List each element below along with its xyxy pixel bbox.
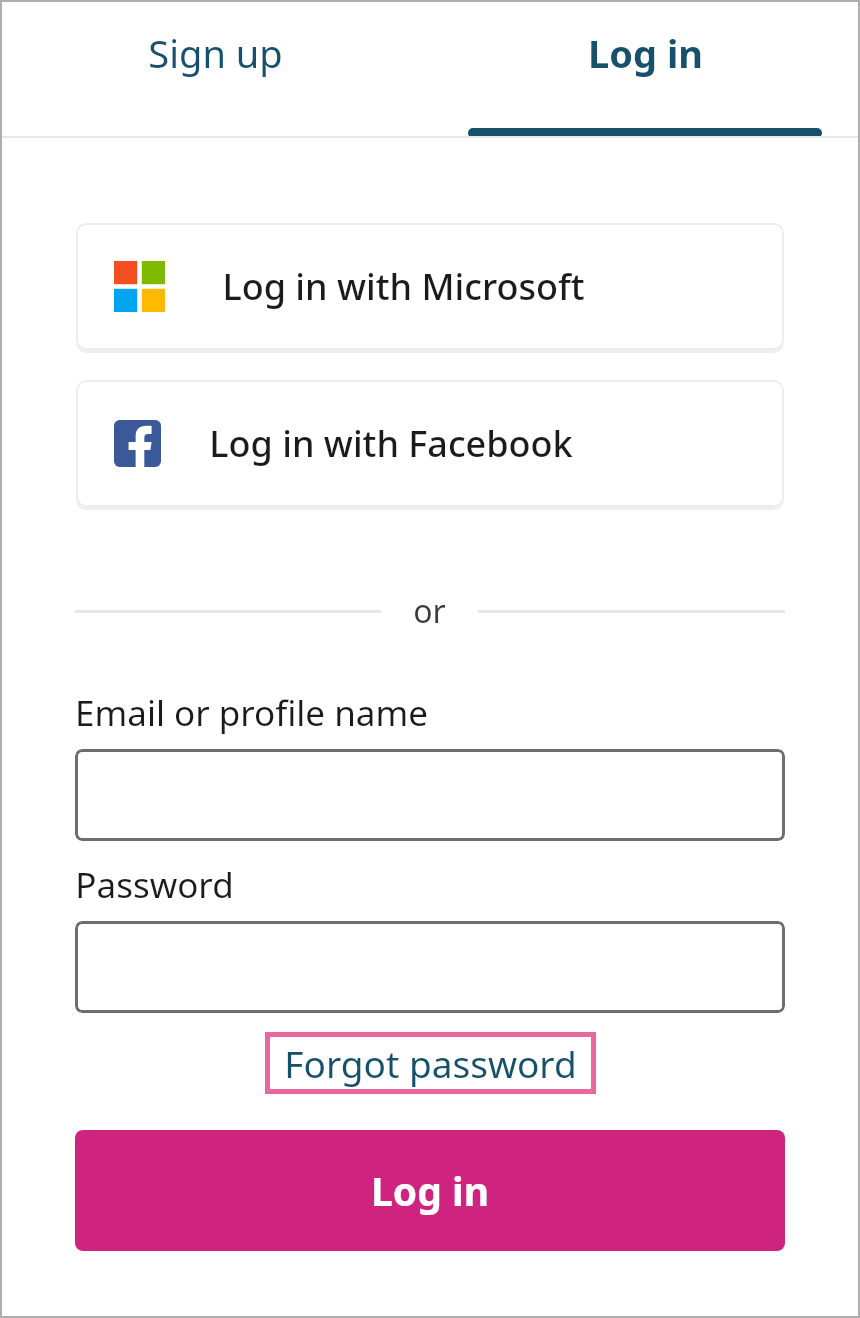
button[interactable]: Microsoft — [76, 223, 784, 350]
staticText: Log in with Facebook — [209, 419, 573, 468]
staticText: Sign up — [148, 27, 283, 79]
button[interactable]: Sign up — [0, 0, 430, 138]
button[interactable]: Email or profile name — [75, 749, 785, 841]
staticText: Forgot password — [284, 1038, 577, 1088]
button[interactable]: Facebook — [76, 380, 784, 507]
button[interactable]: Forgot password — [265, 1032, 596, 1094]
other: Facebook — [114, 420, 161, 467]
other: Microsoft — [114, 261, 165, 312]
button[interactable]: Log in — [430, 0, 860, 138]
staticText: Email or profile name — [75, 689, 428, 737]
staticText: Log in — [371, 1164, 489, 1217]
staticText: or — [413, 589, 446, 633]
staticText: Log in — [588, 27, 703, 79]
button[interactable]: Password — [75, 921, 785, 1013]
button[interactable]: Log in — [75, 1130, 785, 1251]
staticText: Password — [75, 861, 234, 909]
staticText: Log in with Microsoft — [222, 262, 585, 311]
